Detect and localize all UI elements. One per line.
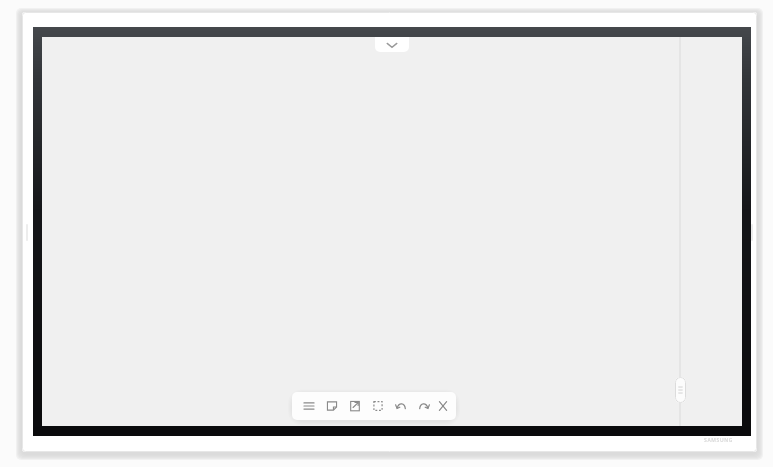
button[interactable]: Menu	[300, 397, 318, 415]
staticText: SAMSUNG	[704, 437, 733, 444]
button[interactable]: New page	[323, 397, 341, 415]
button[interactable]: Page handle	[675, 377, 686, 403]
button[interactable]: Close	[438, 397, 448, 415]
button[interactable]: Select area	[369, 397, 387, 415]
button[interactable]: Export	[346, 397, 364, 415]
button[interactable]: Redo	[415, 397, 433, 415]
button[interactable]: Undo	[392, 397, 410, 415]
button[interactable]: Show menu	[375, 37, 409, 52]
